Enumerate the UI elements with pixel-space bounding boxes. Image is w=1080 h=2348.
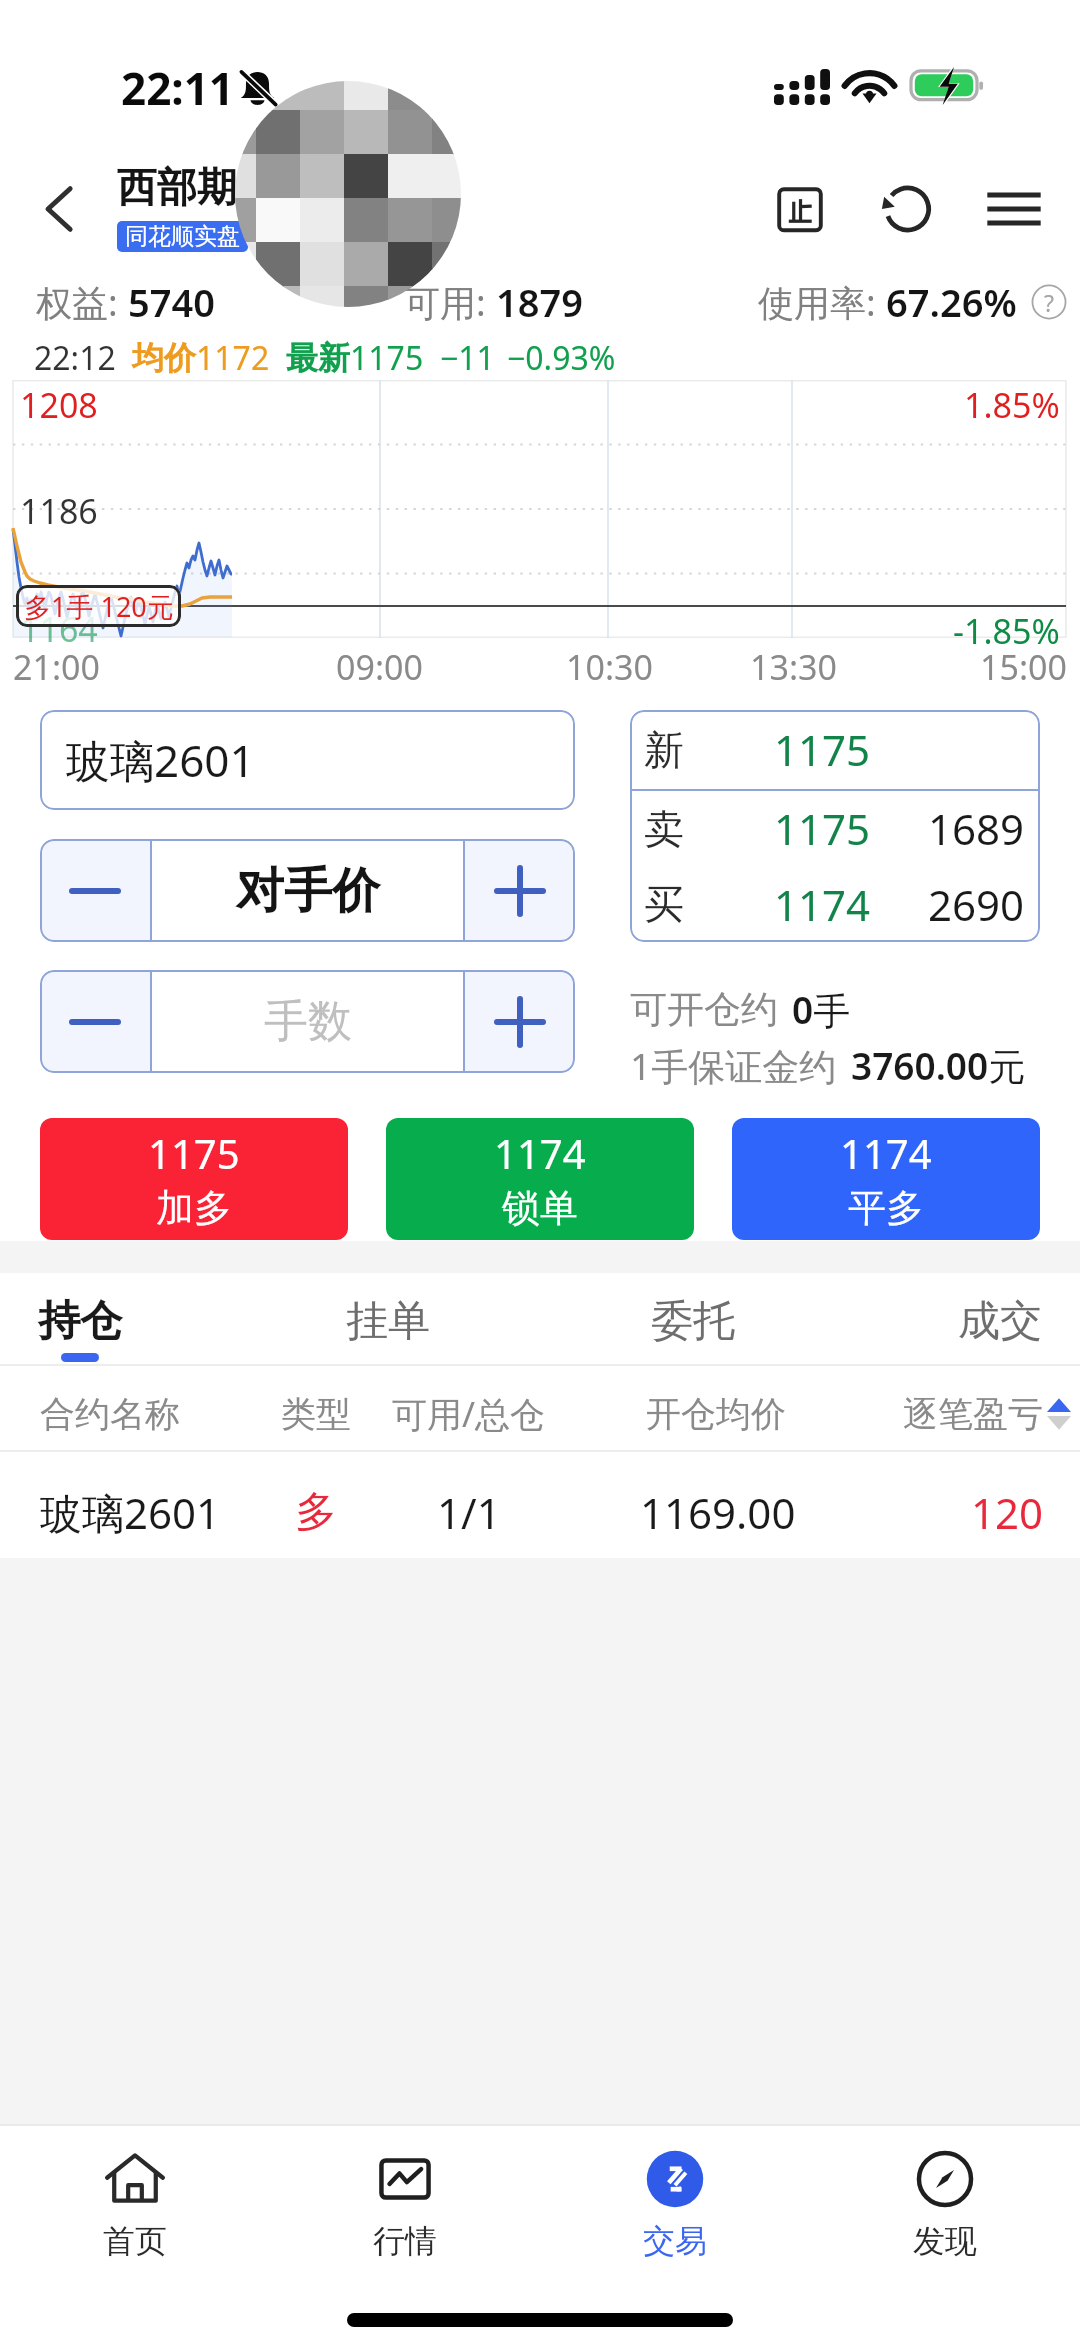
staticText: 2690 <box>928 876 1025 933</box>
button[interactable]: 1174 <box>386 1118 694 1240</box>
button[interactable]: 首页 <box>50 2136 220 2264</box>
staticText: 加多 <box>156 1184 232 1232</box>
button[interactable]: 行情 <box>320 2136 490 2264</box>
staticText: 玻璃2601 <box>66 730 255 790</box>
staticText: 对手价 <box>236 861 380 921</box>
button[interactable]: Increase <box>465 839 575 942</box>
button[interactable]: Back <box>20 169 100 249</box>
button[interactable]: Help <box>1031 284 1067 320</box>
staticText: −0.93% <box>507 336 616 380</box>
staticText: 发现 <box>913 2221 977 2261</box>
staticText: 5740 <box>128 276 215 328</box>
staticText: 可开仓约 <box>630 986 778 1033</box>
staticText: 1175 <box>350 336 424 380</box>
staticText: 类型 <box>281 1392 351 1436</box>
button[interactable]: 委托 <box>617 1273 769 1366</box>
staticText: 平多 <box>848 1184 924 1232</box>
staticText: 1174 <box>494 1126 586 1180</box>
staticText: 22:11 <box>121 58 235 118</box>
staticText: 逐笔盈亏 <box>903 1392 1043 1436</box>
staticText: -1.85% <box>953 608 1060 654</box>
staticText: 玻璃2601 <box>40 1484 221 1541</box>
button[interactable]: Decrease <box>40 970 150 1073</box>
staticText: 10:30 <box>566 644 653 690</box>
staticText: 1175 <box>774 721 871 778</box>
staticText: 1175 <box>148 1126 240 1180</box>
staticText: 可用: <box>404 278 496 327</box>
staticText: 1172 <box>196 336 270 380</box>
staticText: 权益: <box>36 278 128 327</box>
staticText: 使用率: <box>758 278 886 327</box>
button[interactable]: 多1手 120元 <box>16 585 181 627</box>
button[interactable]: 成交 <box>924 1273 1076 1366</box>
staticText: 13:30 <box>750 644 837 690</box>
staticText: 1186 <box>20 488 98 534</box>
staticText: 67.26% <box>886 276 1017 328</box>
staticText: 西部期货 <box>117 162 277 212</box>
staticText: 可用/总仓 <box>392 1390 546 1438</box>
staticText: 1174 <box>774 876 871 933</box>
staticText: 21:00 <box>13 644 100 690</box>
staticText: 手数 <box>264 994 352 1049</box>
button[interactable]: 挂单 <box>312 1273 464 1366</box>
staticText: 卖 <box>644 804 684 854</box>
button[interactable]: 买 <box>630 866 1040 942</box>
staticText: 成交 <box>958 1295 1042 1348</box>
staticText: 1208 <box>20 382 98 428</box>
button[interactable]: 手数 <box>152 970 463 1073</box>
button[interactable]: 发现 <box>860 2136 1030 2264</box>
staticText: 新 <box>644 725 684 775</box>
staticText: 开仓均价 <box>646 1392 786 1436</box>
staticText: 1.85% <box>964 382 1060 428</box>
staticText: 行情 <box>373 2221 437 2261</box>
staticText: 120 <box>971 1484 1044 1541</box>
button[interactable]: 交易 <box>590 2136 760 2264</box>
button[interactable]: Increase <box>465 970 575 1073</box>
button[interactable]: 玻璃2601 <box>40 710 575 810</box>
staticText: 买 <box>644 879 684 929</box>
staticText: 持仓 <box>38 1295 122 1348</box>
button[interactable]: 对手价 <box>152 839 463 942</box>
staticText: −11 <box>440 336 495 380</box>
staticText: 挂单 <box>346 1295 430 1348</box>
staticText: 锁单 <box>502 1184 578 1232</box>
button[interactable]: 新 <box>630 710 1040 789</box>
button[interactable]: Decrease <box>40 839 150 942</box>
staticText: 1169.00 <box>640 1484 796 1541</box>
staticText: 最新 <box>286 338 350 378</box>
button[interactable]: 1174 <box>732 1118 1040 1240</box>
staticText: 3760.00元 <box>851 1040 1026 1091</box>
staticText: 1879 <box>496 276 583 328</box>
staticText: 1174 <box>840 1126 932 1180</box>
staticText: 09:00 <box>336 644 423 690</box>
staticText: 15:00 <box>980 644 1067 690</box>
button[interactable]: 玻璃2601 <box>0 1452 1080 1558</box>
staticText: 0手 <box>792 984 851 1035</box>
staticText: 合约名称 <box>40 1392 180 1436</box>
staticText: 多 <box>295 1486 337 1539</box>
staticText: 1/1 <box>437 1484 501 1541</box>
button[interactable]: Menu <box>974 169 1054 249</box>
button[interactable]: 卖 <box>630 791 1040 866</box>
staticText: ? <box>1044 287 1054 318</box>
staticText: 1689 <box>928 800 1025 857</box>
button[interactable]: 止损 <box>760 169 840 249</box>
button[interactable]: 1175 <box>40 1118 348 1240</box>
button[interactable]: Refresh <box>866 169 946 249</box>
button[interactable]: 持仓 <box>4 1273 156 1366</box>
staticText: 1手保证金约 <box>630 1040 837 1091</box>
staticText: 1164 <box>20 606 98 652</box>
staticText: 首页 <box>103 2221 167 2261</box>
staticText: 同花顺实盘 <box>125 222 240 251</box>
staticText: 多1手 120元 <box>24 588 174 625</box>
staticText: 均价 <box>132 338 196 378</box>
staticText: 委托 <box>651 1295 735 1348</box>
staticText: 22:12 <box>34 336 116 380</box>
staticText: 1175 <box>774 800 871 857</box>
staticText: 交易 <box>643 2221 707 2261</box>
